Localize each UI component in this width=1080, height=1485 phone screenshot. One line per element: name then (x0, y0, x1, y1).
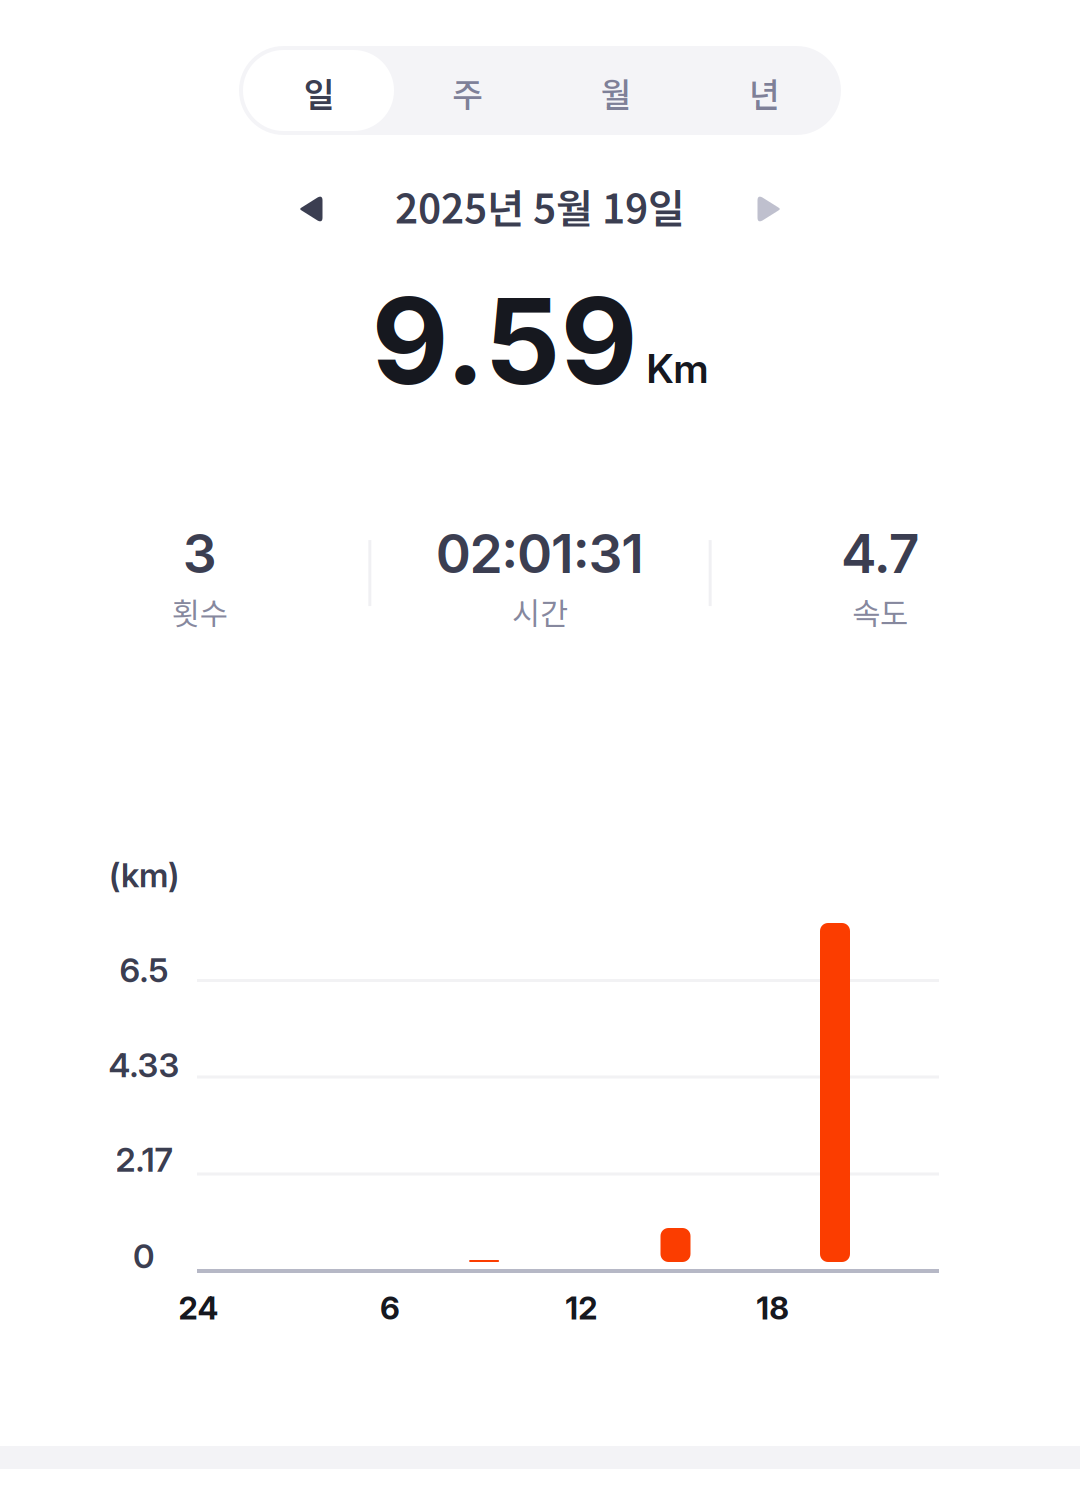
button[interactable]: Next day (710, 176, 829, 236)
button[interactable]: 주 (391, 46, 540, 135)
staticText: 년 (749, 68, 780, 117)
staticText: 횟수 (172, 589, 228, 634)
staticText: 3 (183, 521, 217, 586)
staticText: (km) (109, 855, 179, 895)
staticText: 02:01:31 (436, 521, 644, 586)
button[interactable]: 월 (540, 46, 688, 135)
staticText: 6 (380, 1289, 400, 1327)
staticText: 속도 (852, 589, 908, 634)
staticText: 4.33 (108, 1045, 179, 1085)
staticText: 2.17 (115, 1139, 172, 1180)
staticText: 4.7 (841, 521, 920, 586)
staticText: 9.59 (371, 269, 637, 413)
staticText: 12 (565, 1289, 597, 1327)
staticText: 주 (452, 68, 483, 117)
staticText: 월 (601, 68, 632, 117)
button[interactable]: 일 (243, 46, 391, 135)
button[interactable]: Previous day (251, 176, 370, 236)
staticText: 0 (133, 1236, 155, 1276)
staticText: 일 (304, 68, 335, 117)
button[interactable]: 년 (688, 46, 837, 135)
staticText: 6.5 (119, 950, 168, 990)
staticText: 18 (756, 1289, 789, 1327)
staticText: 24 (178, 1289, 218, 1327)
staticText: 2025년 5월 19일 (395, 177, 685, 235)
staticText: Km (646, 344, 708, 393)
staticText: 시간 (512, 589, 568, 634)
